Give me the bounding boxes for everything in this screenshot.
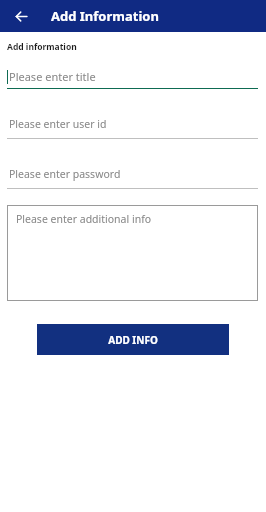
- staticText: Please enter title: [9, 69, 96, 84]
- staticText: ADD INFO: [108, 333, 158, 347]
- button[interactable]: Please enter user id: [7, 117, 258, 139]
- button[interactable]: Back: [10, 5, 32, 27]
- button[interactable]: ADD INFO: [37, 324, 229, 355]
- button[interactable]: Please enter title: [7, 69, 258, 89]
- staticText: Add information: [7, 41, 77, 53]
- staticText: Please enter user id: [9, 117, 107, 131]
- staticText: Please enter password: [9, 167, 121, 181]
- staticText: Add Information: [51, 7, 159, 25]
- button[interactable]: Please enter additional info: [7, 205, 258, 301]
- button[interactable]: Please enter password: [7, 167, 258, 189]
- staticText: Please enter additional info: [16, 212, 152, 226]
